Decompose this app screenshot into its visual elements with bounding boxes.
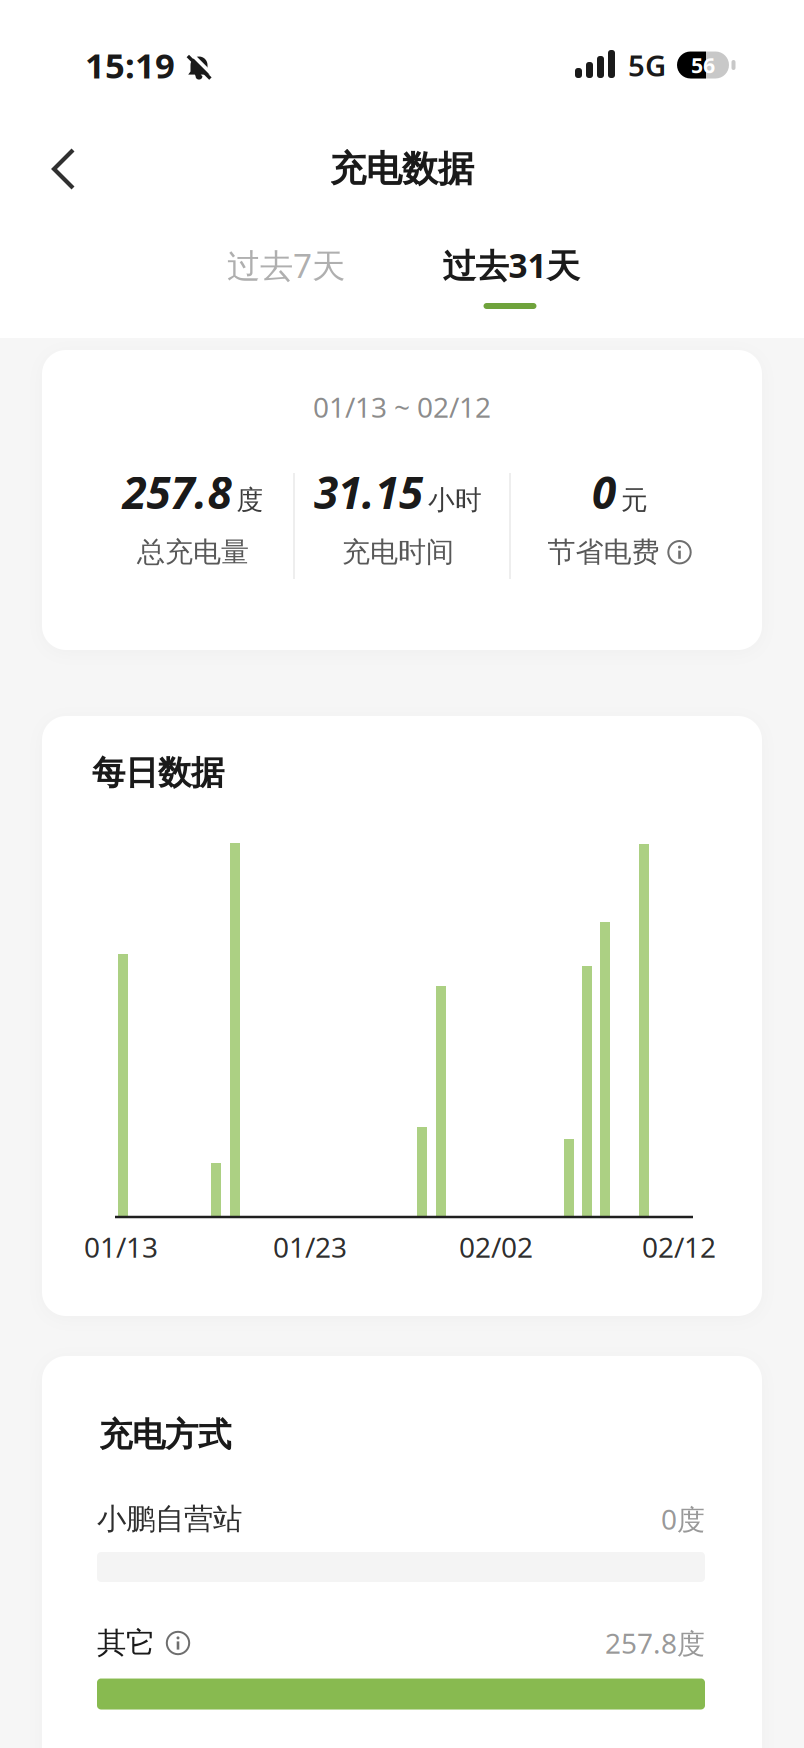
staticText: 小鹏自营站 [97, 1501, 242, 1537]
staticText: 过去31天 [442, 243, 579, 287]
staticText: 01/13 [84, 1228, 158, 1266]
button[interactable]: 过去7天 [196, 235, 376, 295]
staticText: 小时 [428, 484, 482, 516]
staticText: 度 [236, 484, 263, 516]
staticText: 过去7天 [227, 243, 345, 287]
staticText: 每日数据 [92, 752, 224, 793]
staticText: 01/13 ~ 02/12 [313, 388, 491, 426]
staticText: 56 [691, 51, 715, 79]
staticText: 总充电量 [137, 535, 249, 569]
staticText: 元 [621, 484, 648, 516]
staticText: 0 [592, 463, 616, 521]
staticText: 0度 [661, 1500, 705, 1538]
staticText: 02/12 [642, 1228, 716, 1266]
button[interactable]: 过去31天 [416, 235, 606, 295]
staticText: 01/23 [273, 1228, 347, 1266]
staticText: 257.8 [122, 463, 231, 521]
staticText: 02/02 [459, 1228, 533, 1266]
button[interactable] [47, 145, 91, 193]
staticText: 充电时间 [342, 535, 454, 569]
button[interactable] [666, 539, 692, 565]
button[interactable] [165, 1630, 191, 1656]
staticText: 充电方式 [99, 1414, 231, 1455]
staticText: 15:19 [85, 42, 175, 88]
staticText: 充电数据 [330, 147, 474, 191]
staticText: 257.8度 [605, 1624, 705, 1662]
staticText: 31.15 [314, 463, 423, 521]
staticText: 其它 [97, 1625, 155, 1661]
staticText: 5G [628, 45, 666, 84]
staticText: 节省电费 [547, 535, 659, 569]
